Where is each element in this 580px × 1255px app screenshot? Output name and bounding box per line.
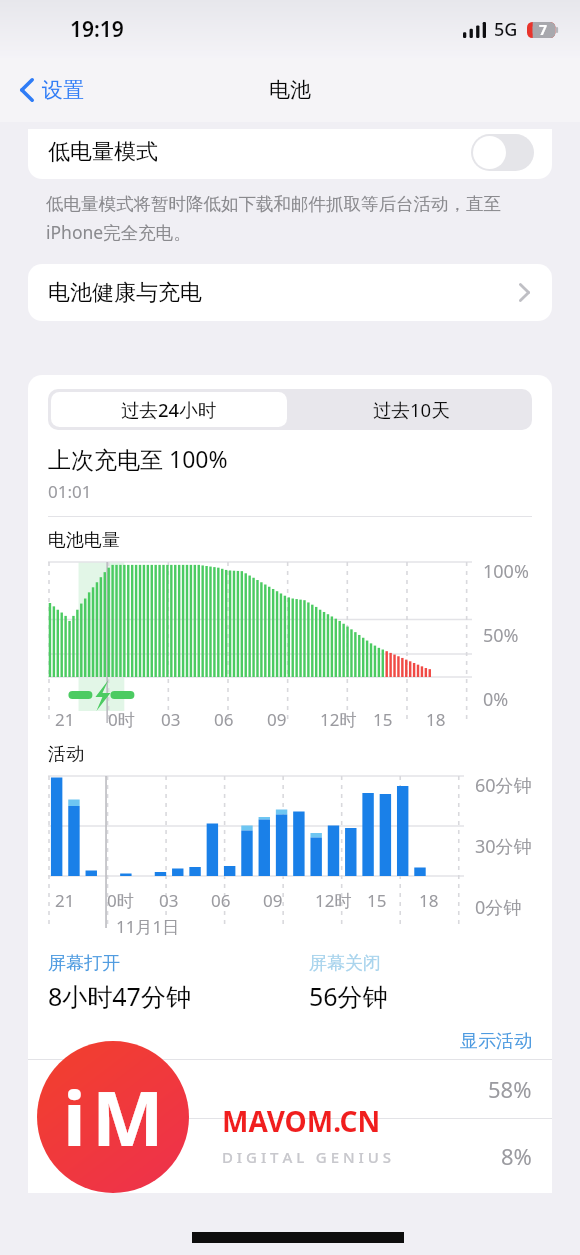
staticText: 18 xyxy=(426,708,446,731)
staticText: 过去10天 xyxy=(373,397,450,422)
staticText: 19:19 xyxy=(70,15,124,44)
staticText: 11月1日 xyxy=(116,915,180,938)
staticText: 屏幕关闭 xyxy=(309,952,381,975)
staticText: M xyxy=(92,1065,164,1169)
staticText: 5G xyxy=(494,17,518,42)
staticText: 低电量模式 xyxy=(48,138,158,166)
staticText: 设置 xyxy=(42,77,84,103)
button[interactable]: 低电量模式 xyxy=(471,134,534,171)
button[interactable]: 过去24小时 xyxy=(51,392,287,427)
staticText: D I G I T A L G E N I U S xyxy=(222,1147,391,1167)
staticText: iPhone完全充电。 xyxy=(46,220,191,244)
staticText: 8小时47分钟 xyxy=(48,979,191,1013)
staticText: 电池电量 xyxy=(48,529,120,552)
staticText: 06 xyxy=(211,889,231,912)
staticText: 60分钟 xyxy=(475,773,532,798)
staticText: 100% xyxy=(483,559,529,584)
button[interactable]: 8% xyxy=(28,1119,552,1193)
staticText: 12时 xyxy=(315,889,352,912)
staticText: 0时 xyxy=(108,708,135,731)
button[interactable]: 58% xyxy=(28,1060,552,1118)
staticText: 06 xyxy=(214,708,234,731)
staticText: 15 xyxy=(373,708,393,731)
staticText: 30分钟 xyxy=(475,834,532,859)
staticText: MAVOM.CN xyxy=(222,1102,381,1140)
button[interactable]: 低电量模式 xyxy=(28,129,552,179)
staticText: 18 xyxy=(419,889,439,912)
button[interactable]: 设置 xyxy=(14,69,90,111)
staticText: 09 xyxy=(263,889,283,912)
staticText: 电池 xyxy=(269,77,311,103)
staticText: 屏幕打开 xyxy=(48,952,120,975)
staticText: 0% xyxy=(483,687,509,712)
staticText: 50% xyxy=(483,623,519,648)
button[interactable]: 显示活动 xyxy=(460,1030,532,1053)
staticText: 电池健康与充电 xyxy=(48,279,202,307)
staticText: 8% xyxy=(501,1141,532,1171)
staticText: 58% xyxy=(488,1074,532,1104)
staticText: 过去24小时 xyxy=(121,397,217,422)
staticText: 56分钟 xyxy=(309,979,388,1013)
button[interactable]: 电池健康与充电 xyxy=(28,264,552,321)
staticText: 21 xyxy=(55,708,75,731)
button[interactable]: 过去10天 xyxy=(290,389,532,430)
staticText: 03 xyxy=(159,889,179,912)
staticText: 0时 xyxy=(107,889,134,912)
staticText: 15 xyxy=(367,889,387,912)
staticText: i xyxy=(63,1065,86,1169)
staticText: 低电量模式将暂时降低如下载和邮件抓取等后台活动，直至 xyxy=(46,193,501,215)
staticText: 21 xyxy=(55,889,75,912)
staticText: 0分钟 xyxy=(475,895,522,920)
staticText: 7 xyxy=(539,20,548,39)
staticText: 活动 xyxy=(48,743,84,766)
staticText: 12时 xyxy=(320,708,357,731)
staticText: 上次充电至 100% xyxy=(48,443,228,474)
staticText: 09 xyxy=(267,708,287,731)
staticText: 03 xyxy=(161,708,181,731)
staticText: 01:01 xyxy=(48,480,92,503)
